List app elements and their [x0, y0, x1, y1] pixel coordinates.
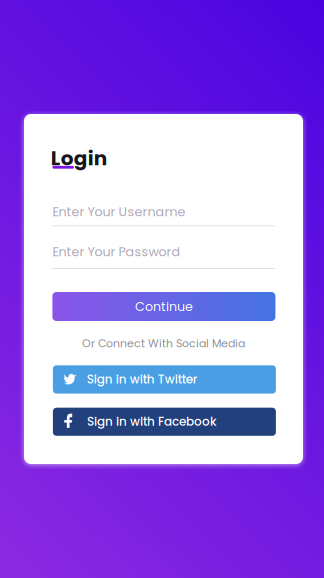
button[interactable]: Sign in with Twitter — [53, 365, 276, 394]
staticText: Enter Your Password — [53, 243, 181, 261]
staticText: Sign in with Facebook — [87, 413, 217, 430]
button[interactable]: Continue — [52, 292, 275, 321]
staticText: Continue — [135, 298, 193, 315]
button[interactable]: Sign in with Facebook — [53, 408, 276, 436]
staticText: Enter Your Username — [53, 203, 186, 221]
staticText: Login — [51, 144, 107, 172]
staticText: Or Connect With Social Media — [82, 336, 245, 351]
staticText: Sign in with Twitter — [87, 371, 198, 388]
